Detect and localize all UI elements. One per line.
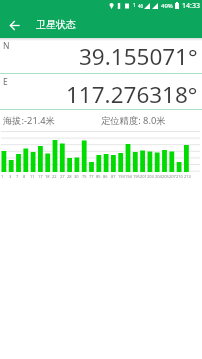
- staticText: 194: [125, 174, 132, 179]
- staticText: E: [3, 76, 8, 88]
- staticText: 117.276318°: [66, 79, 198, 109]
- staticText: 85: [96, 174, 101, 179]
- staticText: 195: [133, 174, 140, 179]
- staticText: N: [3, 40, 10, 52]
- staticText: 1: [1, 174, 4, 179]
- staticText: 201: [140, 174, 147, 179]
- staticText: 87: [111, 174, 116, 179]
- staticText: 22: [52, 174, 57, 179]
- staticText: 14:33: [182, 1, 200, 11]
- staticText: 18: [45, 174, 50, 179]
- staticText: 28: [67, 174, 72, 179]
- staticText: 27: [60, 174, 65, 179]
- staticText: 86: [103, 174, 108, 179]
- staticText: 205: [162, 174, 169, 179]
- staticText: 207: [169, 174, 176, 179]
- staticText: 46: [138, 3, 144, 9]
- staticText: 1: [133, 2, 136, 9]
- staticText: 213: [184, 174, 191, 179]
- staticText: 30: [74, 174, 79, 179]
- staticText: 210: [176, 174, 183, 179]
- staticText: 7: [16, 174, 19, 179]
- staticText: 39.155071°: [79, 41, 198, 72]
- staticText: 49%: [161, 2, 173, 10]
- staticText: 定位精度: 8.0米: [101, 114, 166, 127]
- staticText: 3: [9, 174, 12, 179]
- staticText: 203: [147, 174, 154, 179]
- button[interactable]: 卫星状态: [0, 11, 202, 38]
- staticText: 75: [82, 174, 87, 179]
- staticText: 77: [89, 174, 94, 179]
- staticText: 11: [30, 174, 35, 179]
- staticText: 8: [23, 174, 26, 179]
- button[interactable]: [10, 21, 19, 30]
- staticText: 204: [155, 174, 162, 179]
- staticText: 193: [118, 174, 125, 179]
- staticText: 卫星状态: [36, 18, 76, 31]
- staticText: 海拔:-21.4米: [3, 114, 55, 127]
- staticText: 17: [38, 174, 43, 179]
